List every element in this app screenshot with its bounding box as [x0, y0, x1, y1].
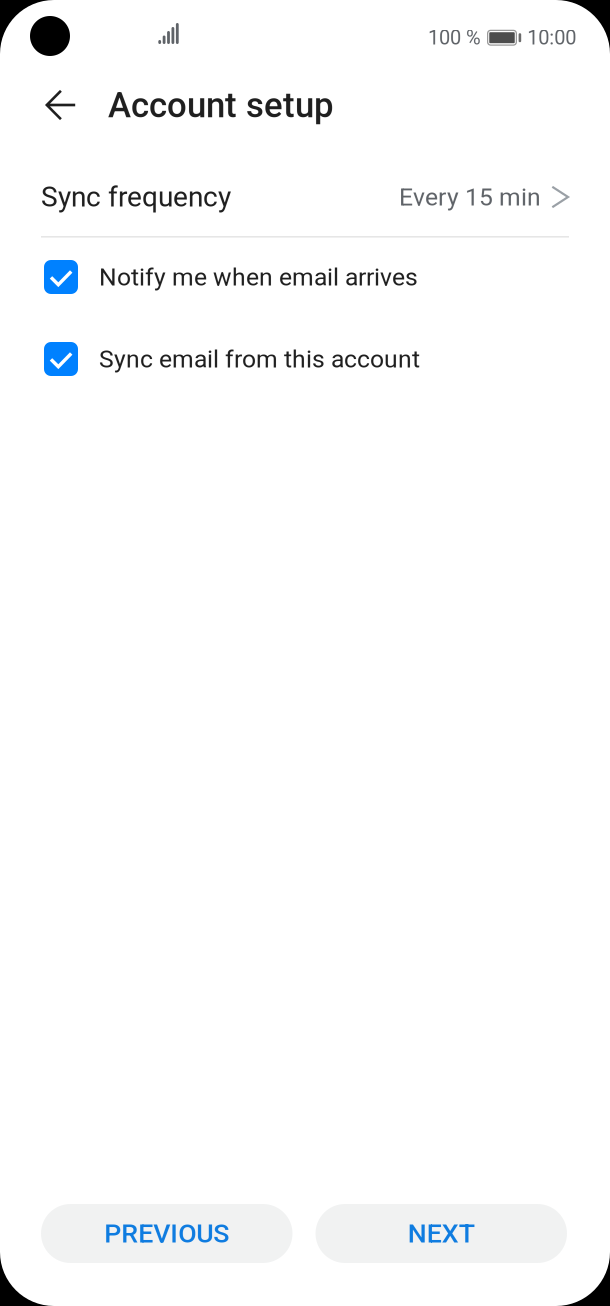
button[interactable]: PREVIOUS — [41, 1204, 292, 1263]
button[interactable]: Sync email from this account — [0, 331, 610, 387]
staticText: 10:00 — [527, 26, 576, 49]
staticText: NEXT — [408, 1218, 475, 1249]
button[interactable]: Notify me when email arrives — [0, 249, 610, 305]
staticText: Notify me when email arrives — [99, 262, 418, 291]
staticText: Sync email from this account — [99, 344, 420, 373]
button[interactable]: Back — [30, 74, 92, 136]
button[interactable]: Sync frequency — [0, 147, 610, 247]
staticText: Sync frequency — [41, 181, 231, 213]
staticText: 100 % — [428, 26, 481, 49]
staticText: Every 15 min — [399, 182, 541, 211]
staticText: Account setup — [108, 85, 333, 126]
staticText: PREVIOUS — [104, 1218, 229, 1249]
button[interactable]: NEXT — [315, 1204, 567, 1263]
